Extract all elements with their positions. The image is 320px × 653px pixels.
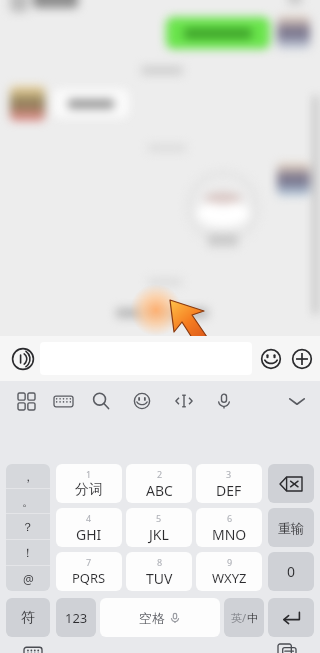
button[interactable]: Emoji — [131, 390, 153, 412]
button[interactable]: 2 — [126, 464, 192, 503]
button[interactable]: Voice — [213, 390, 235, 412]
staticText: WXYZ — [212, 569, 247, 587]
button[interactable]: Emoji — [256, 344, 286, 374]
staticText: GHI — [76, 525, 102, 544]
staticText: 123 — [65, 609, 88, 627]
button[interactable]: 5 — [126, 508, 192, 547]
staticText: DEF — [216, 481, 242, 500]
staticText: ABC — [146, 481, 173, 500]
button[interactable]: 英 — [224, 598, 264, 637]
staticText: 3 — [226, 468, 232, 480]
staticText: / — [242, 610, 247, 625]
button[interactable]: 7 — [56, 552, 122, 591]
button[interactable]: 重输 — [268, 508, 314, 547]
staticText: 分词 — [75, 481, 103, 499]
staticText: 2 — [157, 468, 163, 480]
button[interactable]: 6 — [196, 508, 262, 547]
staticText: 英 — [231, 611, 242, 625]
button[interactable]: 空格 — [100, 598, 220, 637]
staticText: 空格 — [139, 610, 165, 626]
staticText: ？ — [22, 519, 34, 534]
staticText: 5 — [156, 512, 162, 524]
staticText: 符 — [21, 609, 35, 627]
button[interactable]: ？ — [6, 514, 50, 539]
button[interactable]: 3 — [196, 464, 262, 503]
staticText: 0 — [287, 562, 296, 581]
button[interactable]: 0 — [268, 552, 314, 591]
staticText: 8 — [157, 556, 163, 568]
staticText: 1 — [86, 468, 92, 480]
staticText: 。 — [22, 494, 34, 509]
staticText: ， — [22, 469, 34, 484]
staticText: ！ — [22, 545, 34, 560]
button[interactable]: Clipboard — [276, 642, 298, 653]
button[interactable]: Switch keyboard — [22, 642, 44, 653]
button[interactable]: 符 — [6, 598, 50, 637]
staticText: PQRS — [72, 569, 106, 587]
button[interactable]: ， — [6, 464, 50, 488]
button[interactable]: Search — [90, 390, 112, 412]
button[interactable]: 4 — [56, 508, 122, 547]
button[interactable]: Voice input — [6, 342, 40, 376]
button[interactable]: More — [287, 344, 317, 374]
staticText: 9 — [227, 556, 233, 568]
staticText: @ — [23, 571, 34, 587]
staticText: MNO — [212, 525, 247, 544]
button[interactable]: Keyboard layouts — [15, 390, 37, 412]
button[interactable]: 1 — [56, 464, 122, 503]
button[interactable]: 123 — [56, 598, 96, 637]
button[interactable]: Move cursor — [173, 390, 195, 412]
staticText: 7 — [86, 556, 92, 568]
staticText: TUV — [146, 569, 173, 588]
staticText: 重输 — [278, 520, 304, 536]
button[interactable]: Enter — [268, 598, 314, 637]
staticText: 4 — [86, 512, 92, 524]
staticText: 中 — [247, 611, 258, 625]
button[interactable]: 8 — [126, 552, 192, 591]
staticText: JKL — [149, 525, 169, 544]
button[interactable]: 。 — [6, 489, 50, 513]
button[interactable]: @ — [6, 566, 50, 591]
button[interactable]: Keyboard — [52, 390, 74, 412]
button[interactable]: ！ — [6, 540, 50, 565]
button[interactable]: Backspace — [268, 464, 314, 503]
button[interactable]: 9 — [196, 552, 262, 591]
button[interactable]: Hide keyboard — [286, 390, 308, 412]
staticText: 6 — [227, 512, 233, 524]
